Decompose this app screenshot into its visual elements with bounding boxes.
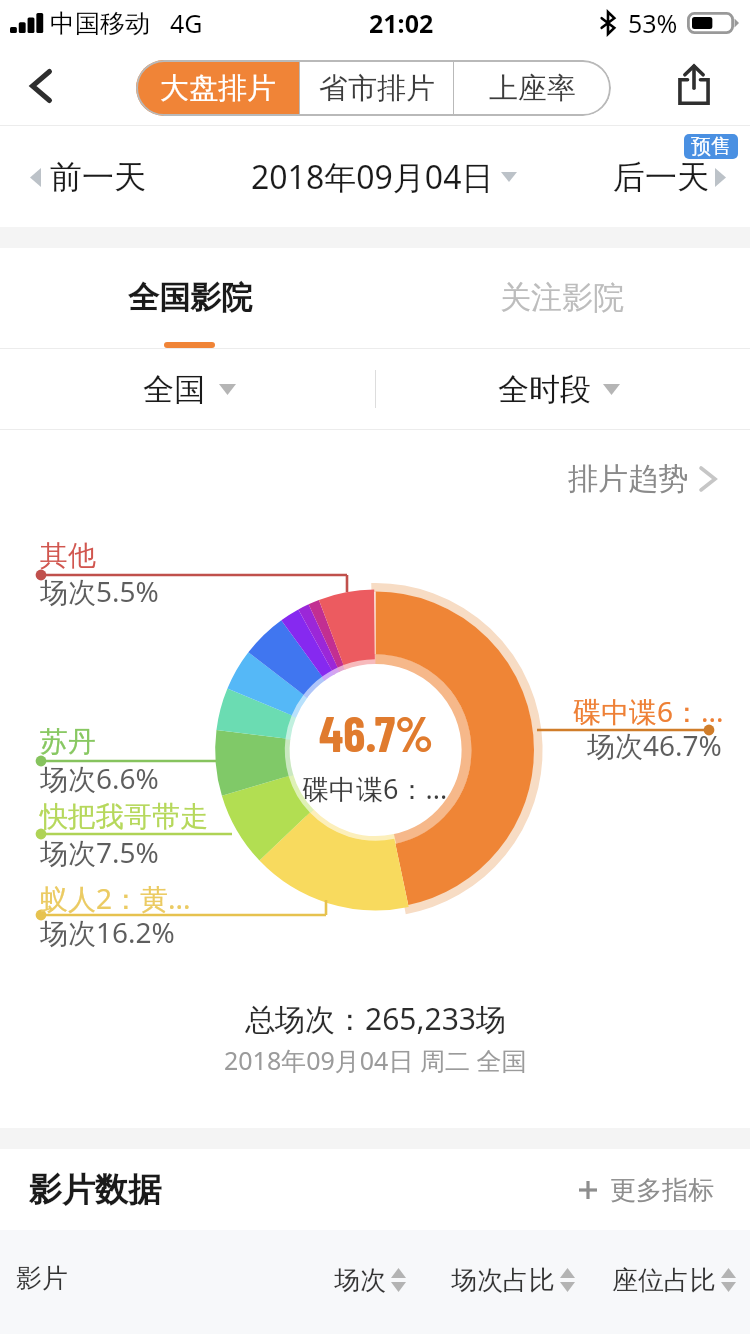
staticText: 其他 bbox=[40, 538, 96, 573]
staticText: 全国 bbox=[143, 370, 205, 409]
staticText: 上座率 bbox=[489, 70, 576, 107]
staticText: 场次6.6% bbox=[40, 759, 159, 797]
staticText: 更多指标 bbox=[610, 1174, 714, 1207]
staticText: 后一天 bbox=[613, 157, 709, 197]
staticText: 前一天 bbox=[50, 157, 146, 197]
staticText: 全国影院 bbox=[128, 278, 252, 317]
staticText: 排片趋势 bbox=[568, 460, 688, 498]
staticText: 碟中谍6：... bbox=[302, 770, 448, 807]
button[interactable]: 全时段 bbox=[486, 359, 632, 419]
staticText: 53% bbox=[628, 6, 678, 40]
staticText: 46.7% bbox=[319, 702, 434, 756]
button[interactable]: Share bbox=[652, 49, 736, 119]
staticText: 场次占比 bbox=[451, 1264, 555, 1297]
button[interactable]: Back bbox=[6, 52, 76, 120]
staticText: 省市排片 bbox=[319, 70, 435, 107]
staticText: 大盘排片 bbox=[160, 70, 276, 107]
staticText: 座位占比 bbox=[612, 1264, 716, 1297]
button[interactable]: 2018年09月04日 bbox=[239, 142, 529, 212]
button[interactable]: 后一天 bbox=[601, 142, 738, 212]
staticText: 影片数据 bbox=[29, 1169, 161, 1211]
staticText: 场次 bbox=[334, 1264, 386, 1297]
staticText: 关注影院 bbox=[500, 278, 624, 317]
button[interactable]: 排片趋势 bbox=[556, 449, 729, 509]
button[interactable]: 全国 bbox=[131, 359, 248, 419]
staticText: 4G bbox=[170, 6, 203, 40]
staticText: 快把我哥带走 bbox=[40, 799, 208, 834]
staticText: 预售 bbox=[691, 134, 731, 159]
button[interactable]: 大盘排片 bbox=[136, 60, 299, 116]
button[interactable]: 上座率 bbox=[454, 60, 611, 116]
button[interactable]: 场次 bbox=[322, 1248, 418, 1312]
staticText: 场次7.5% bbox=[40, 833, 159, 871]
button[interactable]: 场次占比 bbox=[439, 1248, 587, 1312]
staticText: 苏丹 bbox=[40, 724, 96, 759]
staticText: 中国移动 bbox=[50, 8, 150, 39]
button[interactable]: 座位占比 bbox=[600, 1248, 748, 1312]
button[interactable]: 影片数据 bbox=[12, 1155, 192, 1225]
button[interactable]: 关注影院 bbox=[472, 252, 652, 342]
staticText: 蚁人2：黄... bbox=[40, 879, 191, 917]
button[interactable]: 更多指标 bbox=[578, 1161, 714, 1219]
staticText: 场次16.2% bbox=[40, 913, 175, 951]
staticText: 21:02 bbox=[369, 6, 434, 40]
staticText: 总场次：265,233场 bbox=[245, 998, 506, 1039]
staticText: 场次5.5% bbox=[40, 572, 159, 610]
button[interactable]: 省市排片 bbox=[300, 60, 453, 116]
staticText: 2018年09月04日 bbox=[251, 155, 494, 199]
button[interactable]: 全国影院 bbox=[100, 252, 280, 342]
button[interactable]: 前一天 bbox=[18, 142, 158, 212]
staticText: 2018年09月04日 周二 全国 bbox=[224, 1043, 527, 1077]
staticText: 碟中谍6：... bbox=[573, 692, 724, 730]
button[interactable]: 预售 bbox=[684, 134, 738, 159]
staticText: 影片 bbox=[16, 1262, 68, 1295]
staticText: 全时段 bbox=[498, 370, 591, 409]
staticText: 场次46.7% bbox=[587, 726, 722, 764]
